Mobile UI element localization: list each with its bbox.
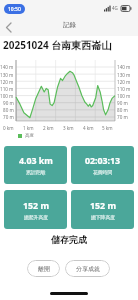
staticText: 130 m — [117, 72, 131, 78]
staticText: 儲存完成 — [51, 234, 87, 245]
staticText: 離開 — [38, 265, 50, 273]
staticText: 4G — [112, 5, 118, 11]
staticText: 140 m — [0, 64, 14, 70]
button[interactable]: 152 m — [4, 190, 67, 229]
staticText: 10:50 — [8, 6, 21, 13]
staticText: 80 m — [117, 107, 128, 113]
staticText: 110 m — [117, 86, 131, 92]
staticText: 累計距離 — [26, 169, 46, 175]
staticText: 70 m — [3, 114, 14, 120]
staticText: 110 m — [0, 86, 14, 92]
staticText: 1 km — [23, 125, 34, 131]
button[interactable] — [2, 20, 18, 34]
staticText: 0 km — [3, 125, 14, 131]
staticText: 總爬升高度 — [24, 214, 48, 220]
staticText: 高度 — [25, 133, 34, 139]
staticText: 5 km — [102, 125, 113, 131]
staticText: 80 m — [3, 107, 14, 113]
staticText: 120 m — [0, 79, 14, 85]
staticText: 140 m — [117, 64, 131, 70]
button[interactable]: 02:03:13 — [71, 146, 134, 184]
staticText: 152 m — [23, 200, 49, 212]
staticText: 90 m — [117, 100, 128, 106]
staticText: 90 m — [3, 100, 14, 106]
staticText: 130 m — [0, 72, 14, 78]
staticText: 記錄 — [63, 21, 76, 29]
staticText: 20251024 台南東西崙山 — [3, 38, 112, 52]
staticText: 100 m — [117, 93, 131, 99]
staticText: 70 m — [117, 114, 128, 120]
staticText: 152 m — [90, 200, 116, 212]
staticText: 02:03:13 — [85, 155, 121, 167]
staticText: 120 m — [117, 79, 131, 85]
staticText: 4.03 km — [19, 155, 53, 167]
button[interactable]: 分享成就 — [65, 260, 110, 277]
staticText: 4 km — [83, 125, 94, 131]
button[interactable]: 4.03 km — [4, 146, 67, 184]
staticText: 總下降高度 — [91, 214, 115, 220]
button[interactable]: 離開 — [27, 260, 60, 277]
staticText: 2 km — [43, 125, 54, 131]
staticText: 花費時間 — [93, 169, 113, 175]
staticText: 分享成就 — [76, 265, 100, 273]
staticText: 3 km — [63, 125, 74, 131]
button[interactable]: 152 m — [71, 190, 134, 229]
staticText: 100 m — [0, 93, 14, 99]
